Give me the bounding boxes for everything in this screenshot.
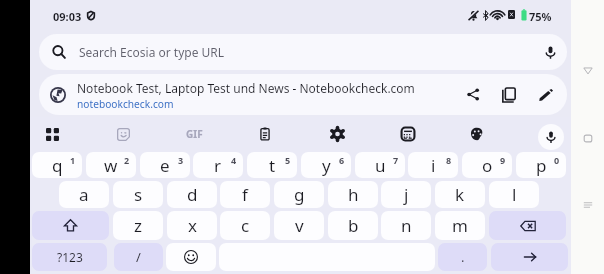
- button[interactable]: b: [328, 211, 378, 240]
- button[interactable]: Theme: [460, 117, 494, 151]
- staticText: o: [482, 154, 493, 177]
- staticText: w: [104, 154, 118, 177]
- staticText: 75%: [529, 9, 552, 24]
- staticText: f: [242, 183, 248, 206]
- button[interactable]: g: [274, 181, 324, 208]
- staticText: k: [455, 183, 465, 206]
- staticText: i: [431, 154, 436, 177]
- button[interactable]: e: [140, 152, 190, 178]
- staticText: n: [401, 214, 412, 237]
- staticText: j: [404, 183, 409, 206]
- button[interactable]: h: [328, 181, 378, 208]
- staticText: c: [241, 214, 250, 237]
- staticText: .: [461, 248, 465, 266]
- staticText: 4: [231, 154, 237, 166]
- button[interactable]: j: [381, 181, 431, 208]
- staticText: v: [295, 214, 304, 237]
- staticText: Search Ecosia or type URL: [79, 44, 225, 60]
- staticText: 9: [500, 154, 506, 166]
- staticText: ?123: [57, 249, 83, 265]
- staticText: h: [348, 183, 359, 206]
- staticText: 09:03: [53, 9, 82, 24]
- staticText: 2: [124, 154, 130, 166]
- button[interactable]: i: [408, 152, 458, 178]
- staticText: Notebook Test, Laptop Test und News - No…: [77, 80, 415, 96]
- button[interactable]: m: [435, 211, 485, 240]
- staticText: b: [348, 214, 359, 237]
- button[interactable]: u: [355, 152, 405, 178]
- button[interactable]: y: [301, 152, 351, 178]
- button[interactable]: Back: [571, 52, 604, 88]
- button[interactable]: /: [114, 243, 163, 271]
- staticText: x: [188, 214, 197, 237]
- staticText: s: [134, 183, 143, 206]
- button[interactable]: n: [381, 211, 431, 240]
- button[interactable]: ?123: [32, 243, 107, 271]
- button[interactable]: Clipboard: [248, 117, 282, 151]
- button[interactable]: w: [86, 152, 136, 178]
- staticText: z: [134, 214, 142, 237]
- button[interactable]: Shift: [32, 211, 109, 240]
- staticText: e: [160, 154, 170, 177]
- staticText: y: [322, 154, 331, 177]
- staticText: q: [52, 154, 63, 177]
- button[interactable]: Calculator: [391, 117, 425, 151]
- button[interactable]: Enter: [491, 243, 568, 271]
- button[interactable]: s: [113, 181, 163, 208]
- button[interactable]: r: [193, 152, 243, 178]
- button[interactable]: f: [220, 181, 270, 208]
- button[interactable]: a: [59, 181, 109, 208]
- staticText: 5: [285, 154, 291, 166]
- button[interactable]: Emoji: [166, 243, 216, 271]
- staticText: u: [375, 154, 386, 177]
- button[interactable]: GIF: [177, 117, 211, 151]
- staticText: d: [187, 183, 198, 206]
- button[interactable]: l: [489, 181, 539, 208]
- staticText: 7: [393, 154, 399, 166]
- staticText: /: [136, 248, 141, 266]
- staticText: t: [269, 154, 276, 177]
- button[interactable]: d: [167, 181, 217, 208]
- button[interactable]: p: [516, 152, 566, 178]
- button[interactable]: Backspace: [489, 211, 566, 240]
- button[interactable]: Voice input: [538, 124, 564, 150]
- staticText: 1: [70, 154, 76, 166]
- staticText: 6: [339, 154, 345, 166]
- button[interactable]: c: [220, 211, 270, 240]
- button[interactable]: Voice search: [534, 34, 567, 70]
- button[interactable]: v: [274, 211, 324, 240]
- button[interactable]: z: [113, 211, 163, 240]
- button[interactable]: Home: [571, 120, 604, 156]
- button[interactable]: x: [167, 211, 217, 240]
- staticText: a: [79, 183, 89, 206]
- staticText: GIF: [186, 127, 203, 141]
- button[interactable]: Copy: [493, 74, 525, 115]
- button[interactable]: Search Ecosia or type URL: [39, 34, 567, 70]
- button[interactable]: Edit: [530, 74, 562, 115]
- staticText: 3: [178, 154, 184, 166]
- button[interactable]: Share: [457, 74, 489, 115]
- button[interactable]: o: [462, 152, 512, 178]
- button[interactable]: t: [247, 152, 297, 178]
- button[interactable]: Settings: [320, 117, 354, 151]
- button[interactable]: Stickers: [106, 117, 140, 151]
- staticText: 8: [446, 154, 452, 166]
- button[interactable]: Recent apps: [571, 187, 604, 223]
- staticText: g: [294, 183, 305, 206]
- staticText: m: [452, 214, 468, 237]
- button[interactable]: q: [32, 152, 82, 178]
- button[interactable]: k: [435, 181, 485, 208]
- button[interactable]: .: [438, 243, 487, 271]
- staticText: r: [214, 154, 222, 177]
- staticText: 0: [554, 154, 560, 166]
- button[interactable]: Apps: [35, 117, 69, 151]
- staticText: notebookcheck.com: [77, 97, 174, 111]
- staticText: l: [512, 183, 517, 206]
- staticText: p: [536, 154, 547, 177]
- button[interactable]: Notebook Test, Laptop Test und News - No…: [39, 74, 567, 115]
